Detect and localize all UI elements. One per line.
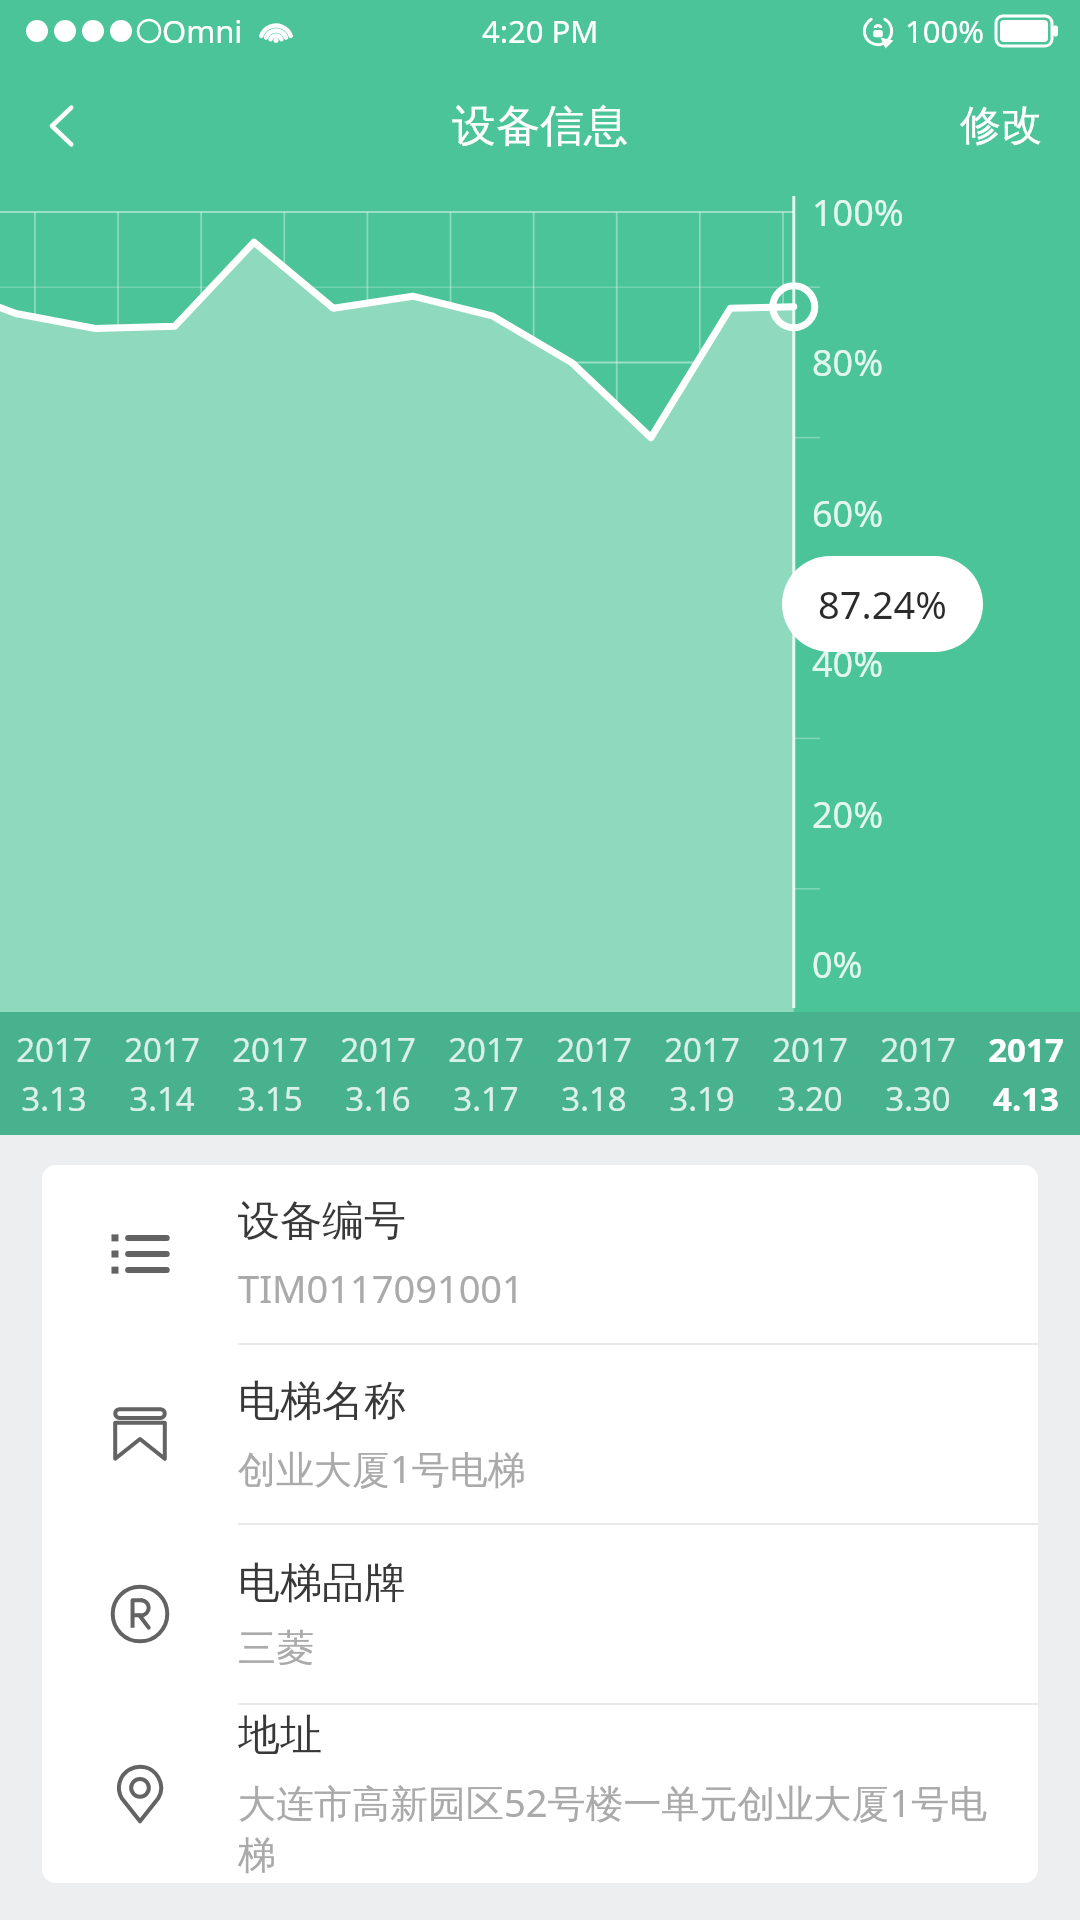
staticText: 3.20	[777, 1076, 843, 1121]
staticText: 修改	[960, 100, 1042, 152]
staticText: 2017	[772, 1027, 848, 1072]
staticText: 3.15	[237, 1076, 303, 1121]
staticText: 地址	[238, 1709, 322, 1762]
staticText: 电梯品牌	[238, 1557, 406, 1610]
staticText: 4.13	[993, 1076, 1059, 1121]
staticText: 2017	[448, 1027, 524, 1072]
button[interactable]: Back	[18, 81, 108, 171]
staticText: 3.17	[453, 1076, 519, 1121]
staticText: TIM0117091001	[238, 1262, 524, 1314]
staticText: 2017	[124, 1027, 200, 1072]
staticText: 80%	[812, 338, 884, 387]
staticText: 2017	[16, 1027, 92, 1072]
staticText: 2017	[880, 1027, 956, 1072]
staticText: 2017	[988, 1027, 1064, 1072]
staticText: 三菱	[238, 1624, 314, 1672]
staticText: 设备编号	[238, 1195, 406, 1248]
staticText: 电梯名称	[238, 1375, 406, 1428]
staticText: 100%	[812, 188, 904, 237]
staticText: 3.16	[345, 1076, 411, 1121]
staticText: 4:20 PM	[482, 10, 599, 52]
staticText: 60%	[812, 489, 884, 538]
staticText: 3.13	[21, 1076, 87, 1121]
staticText: 2017	[340, 1027, 416, 1072]
staticText: 100%	[905, 10, 984, 52]
staticText: 大连市高新园区52号楼一单元创业大厦1号电梯	[238, 1776, 1008, 1880]
button[interactable]: 设备编号	[42, 1165, 1038, 1343]
staticText: Omni	[162, 10, 243, 52]
staticText: 0%	[812, 940, 863, 989]
staticText: 3.14	[129, 1076, 195, 1121]
staticText: 创业大厦1号电梯	[238, 1442, 526, 1494]
staticText: 3.30	[885, 1076, 951, 1121]
staticText: 3.18	[561, 1076, 627, 1121]
staticText: 40%	[812, 639, 884, 688]
button[interactable]: 地址	[42, 1705, 1038, 1883]
button[interactable]: 电梯名称	[42, 1345, 1038, 1523]
staticText: 87.24%	[818, 578, 947, 630]
button[interactable]: 87.24%	[782, 556, 983, 652]
staticText: 2017	[232, 1027, 308, 1072]
staticText: 2017	[556, 1027, 632, 1072]
staticText: 2017	[664, 1027, 740, 1072]
staticText: 20%	[812, 790, 884, 839]
button[interactable]: 修改	[944, 88, 1058, 164]
staticText: 设备信息	[452, 99, 628, 154]
button[interactable]: 电梯品牌	[42, 1525, 1038, 1703]
staticText: 3.19	[669, 1076, 735, 1121]
